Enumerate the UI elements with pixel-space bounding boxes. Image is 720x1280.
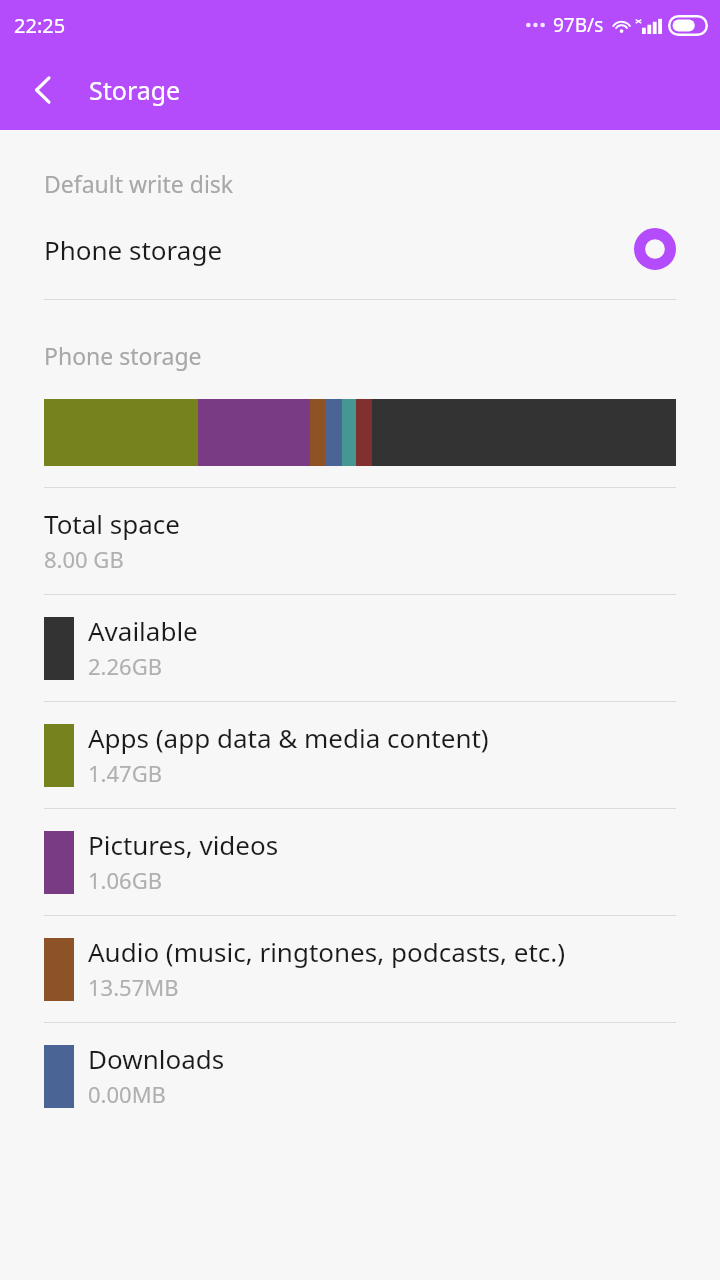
staticText: Downloads xyxy=(88,1041,225,1076)
button[interactable]: Apps (app data & media content) xyxy=(0,702,720,808)
button[interactable]: Back xyxy=(22,69,64,111)
button[interactable]: Total space xyxy=(0,488,720,594)
staticText: Phone storage xyxy=(44,340,202,371)
button[interactable]: Audio (music, ringtones, podcasts, etc.) xyxy=(0,916,720,1022)
staticText: Storage xyxy=(89,73,181,107)
staticText: Apps (app data & media content) xyxy=(88,720,489,755)
staticText: Default write disk xyxy=(44,168,234,199)
staticText: 13.57MB xyxy=(88,972,179,1002)
button[interactable]: Pictures, videos xyxy=(0,809,720,915)
staticText: 97B/s xyxy=(553,12,604,38)
staticText: 22:25 xyxy=(14,12,66,39)
staticText: Pictures, videos xyxy=(88,827,279,862)
button[interactable]: Downloads xyxy=(0,1023,720,1129)
staticText: 1.06GB xyxy=(88,865,162,895)
staticText: 0.00MB xyxy=(88,1079,166,1109)
staticText: Total space xyxy=(44,506,180,541)
staticText: Available xyxy=(88,613,198,648)
button[interactable]: Phone storage xyxy=(0,199,720,299)
staticText: 1.47GB xyxy=(88,758,162,788)
staticText: Audio (music, ringtones, podcasts, etc.) xyxy=(88,934,566,969)
staticText: 8.00 GB xyxy=(44,544,124,574)
button[interactable]: Available xyxy=(0,595,720,701)
staticText: 2.26GB xyxy=(88,651,162,681)
staticText: Phone storage xyxy=(44,232,634,267)
